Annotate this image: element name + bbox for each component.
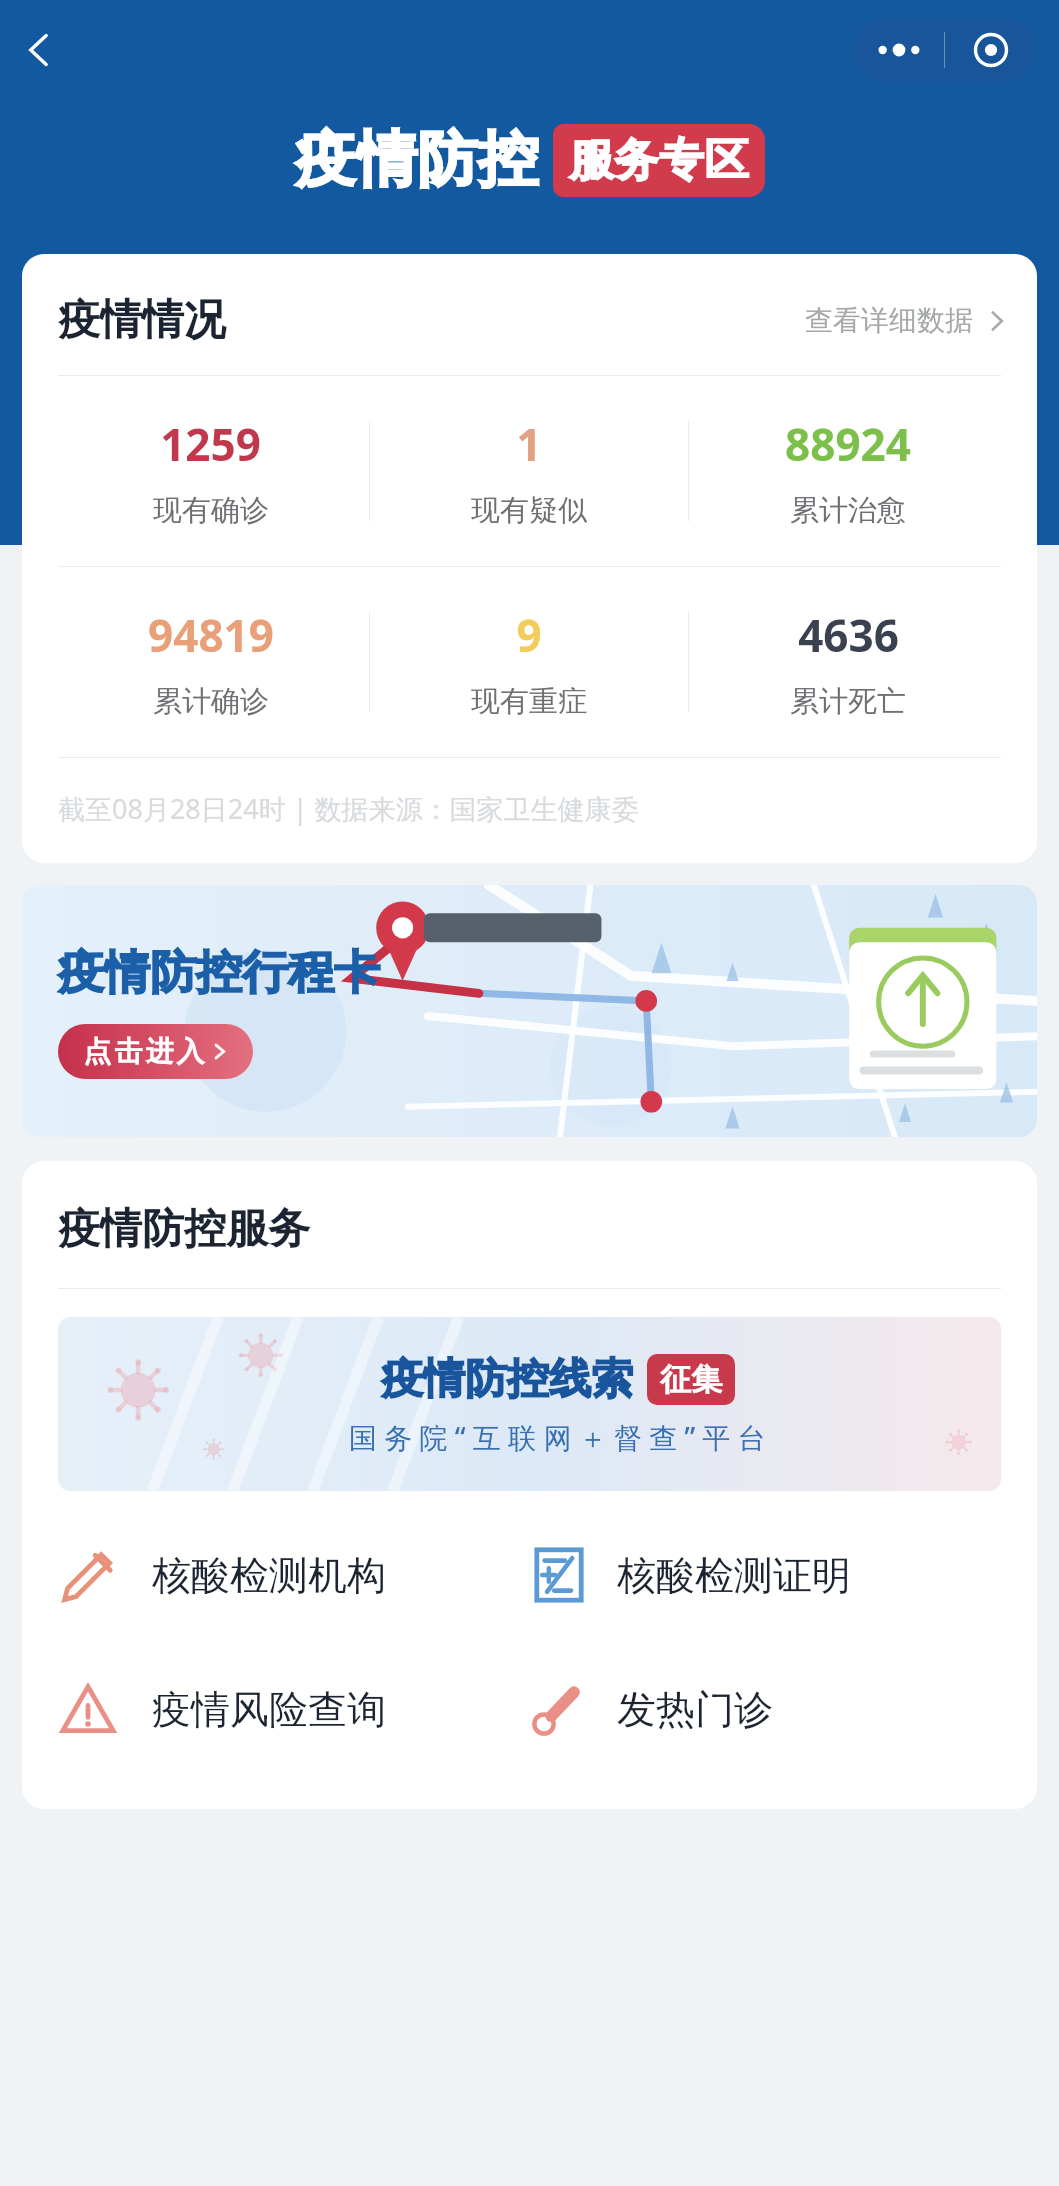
staticText: 疫情防控服务 bbox=[58, 1203, 310, 1256]
staticText: 累计确诊 bbox=[153, 683, 269, 720]
staticText: 国 务 院 “ 互 联 网 ＋ 督 查 ” 平 台 bbox=[349, 1418, 766, 1456]
staticText: 4636 bbox=[798, 605, 899, 665]
staticText: 现有确诊 bbox=[153, 492, 269, 529]
staticText: 服务专区 bbox=[569, 133, 749, 188]
button[interactable]: 4636 bbox=[689, 567, 1007, 757]
button[interactable]: 9 bbox=[370, 567, 688, 757]
other: 发热门诊 bbox=[529, 1679, 589, 1739]
button[interactable]: 1 bbox=[370, 376, 688, 566]
other: 核酸检测证明 bbox=[529, 1545, 589, 1605]
other: 疫情风险查询 bbox=[58, 1679, 118, 1739]
staticText: 核酸检测证明 bbox=[617, 1551, 851, 1600]
staticText: 现有重症 bbox=[471, 683, 587, 720]
staticText: 查看详细数据 bbox=[805, 303, 973, 338]
other: 核酸检测机构 bbox=[58, 1545, 118, 1605]
staticText: 94819 bbox=[148, 605, 274, 665]
staticText: 现有疑似 bbox=[471, 492, 587, 529]
button[interactable]: 疫情风险查询 bbox=[22, 1653, 529, 1765]
button[interactable]: 核酸检测证明 bbox=[529, 1519, 1037, 1631]
button[interactable]: 核酸检测机构 bbox=[22, 1519, 529, 1631]
staticText: 1 bbox=[516, 414, 542, 474]
staticText: 9 bbox=[516, 605, 542, 665]
staticText: 疫情情况 bbox=[58, 294, 226, 347]
staticText: 疫情防控线索 bbox=[381, 1353, 633, 1406]
button[interactable]: 疫情防控线索 bbox=[58, 1317, 1001, 1491]
button[interactable]: 1259 bbox=[52, 376, 369, 566]
staticText: 发热门诊 bbox=[617, 1685, 773, 1734]
button[interactable]: Back bbox=[8, 19, 70, 81]
button[interactable]: 88924 bbox=[689, 376, 1007, 566]
staticText: 88924 bbox=[785, 414, 911, 474]
staticText: 累计死亡 bbox=[790, 683, 906, 720]
button[interactable]: 疫情防控行程卡 点击进入 bbox=[22, 885, 1037, 1137]
staticText: 疫情防控行程卡 bbox=[58, 944, 380, 1002]
staticText: 疫情风险查询 bbox=[152, 1685, 386, 1734]
staticText: 点击进入 bbox=[82, 1034, 206, 1069]
button[interactable]: 发热门诊 bbox=[529, 1653, 1037, 1765]
staticText: 征集 bbox=[660, 1360, 722, 1399]
staticText: 1259 bbox=[160, 414, 261, 474]
staticText: 核酸检测机构 bbox=[152, 1551, 386, 1600]
staticText: 截至08月28日24时 | 数据来源：国家卫生健康委 bbox=[58, 790, 639, 827]
button[interactable]: 94819 bbox=[52, 567, 369, 757]
staticText: 疫情防控 bbox=[295, 122, 539, 198]
staticText: 累计治愈 bbox=[790, 492, 906, 529]
button[interactable]: More options and close bbox=[853, 18, 1037, 82]
button[interactable]: 疫情情况 bbox=[22, 254, 1037, 375]
